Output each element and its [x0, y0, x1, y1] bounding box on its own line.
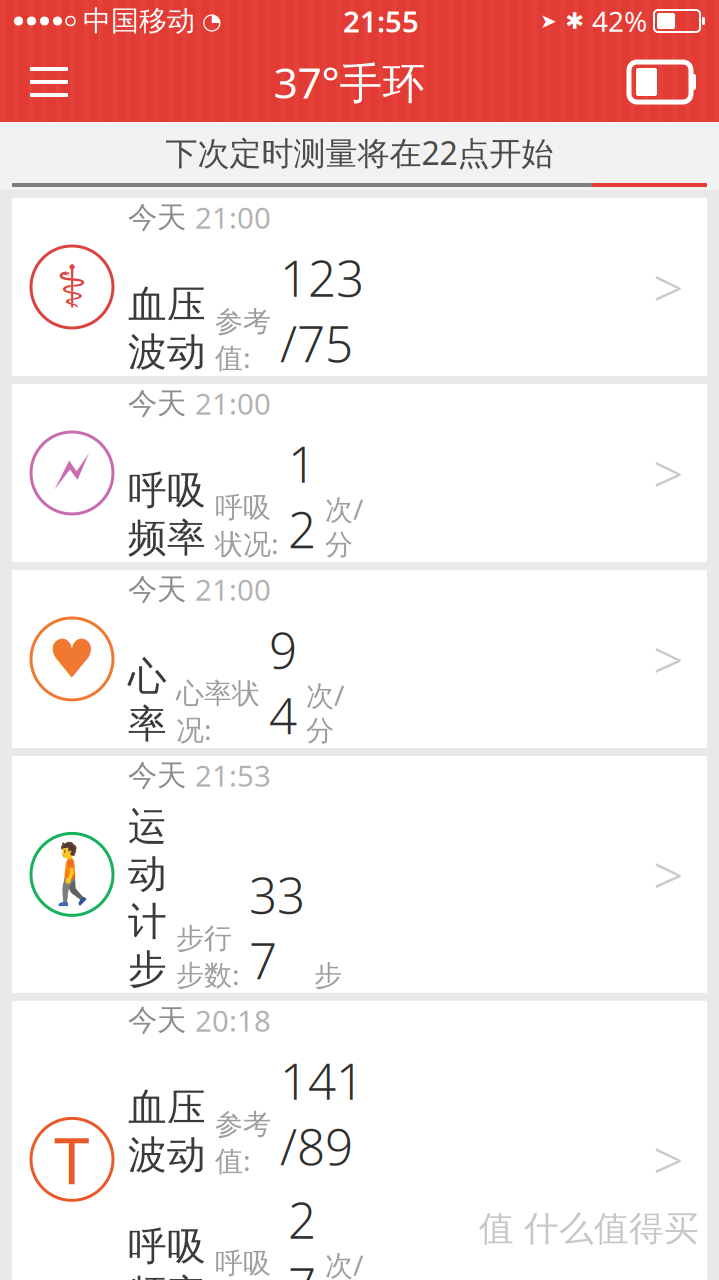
staticText: 337 [249, 862, 305, 993]
staticText: 37°手环 [273, 54, 425, 110]
staticText: 参考值: [215, 1107, 271, 1179]
staticText: > [653, 252, 683, 322]
staticText: 值 什么值得买 [479, 1207, 699, 1250]
button[interactable]: T [12, 1001, 707, 1280]
staticText: 下次定时测量将在22点开始 [165, 131, 553, 174]
staticText: 今天 [128, 199, 186, 235]
staticText: ➤ [540, 10, 557, 32]
staticText: 141/89 [280, 1048, 364, 1179]
staticText: 21:55 [343, 1, 419, 40]
button[interactable]: ♥ [12, 570, 707, 748]
staticText: 21:00 [195, 384, 271, 423]
staticText: T [54, 1117, 90, 1202]
staticText: 21:53 [195, 756, 271, 795]
staticText: 今天 [128, 757, 186, 793]
staticText: 27 [288, 1187, 316, 1280]
staticText: 42% [592, 2, 647, 40]
staticText: 心率 [128, 653, 167, 748]
staticText: 🗲 [54, 447, 90, 499]
staticText: 94 [269, 617, 297, 748]
staticText: 次/分 [325, 490, 363, 562]
staticText: 呼吸频率 [128, 467, 206, 562]
staticText: > [653, 623, 683, 694]
staticText: ◔ [202, 8, 222, 34]
staticText: 心率状况: [176, 676, 260, 748]
staticText: 今天 [128, 385, 186, 421]
staticText: 中国移动 [83, 4, 195, 38]
button[interactable]: ⚕ [12, 198, 707, 376]
staticText: > [653, 1124, 683, 1195]
staticText: 步行步数: [176, 921, 240, 993]
staticText: 12 [288, 431, 316, 562]
staticText: ♥ [48, 629, 96, 689]
staticText: 20:18 [195, 1001, 271, 1040]
button[interactable]: 菜单 [14, 45, 84, 119]
staticText: 运动计步 [128, 803, 167, 993]
button[interactable]: 🚶 [12, 756, 707, 993]
staticText: 血压波动 [128, 281, 206, 376]
staticText: ⚕ [56, 254, 88, 320]
staticText: 血压波动 [128, 1084, 206, 1179]
staticText: 今天 [128, 571, 186, 607]
staticText: 21:00 [195, 198, 271, 237]
button[interactable]: 电量 [615, 45, 705, 119]
staticText: 次/分 [325, 1246, 363, 1280]
staticText: 次/分 [306, 676, 344, 748]
staticText: 123/75 [280, 245, 364, 376]
staticText: 参考值: [215, 304, 271, 376]
staticText: ✱ [565, 8, 584, 34]
staticText: 🚶 [35, 841, 108, 908]
staticText: 今天 [128, 1002, 186, 1038]
staticText: 呼吸频率 [128, 1223, 206, 1280]
staticText: > [653, 839, 683, 910]
staticText: 呼吸状况: [215, 1246, 279, 1280]
staticText: 步 [314, 958, 342, 993]
staticText: > [653, 438, 683, 508]
button[interactable]: 🗲 [12, 384, 707, 562]
staticText: 呼吸状况: [215, 490, 279, 562]
staticText: 21:00 [195, 570, 271, 609]
